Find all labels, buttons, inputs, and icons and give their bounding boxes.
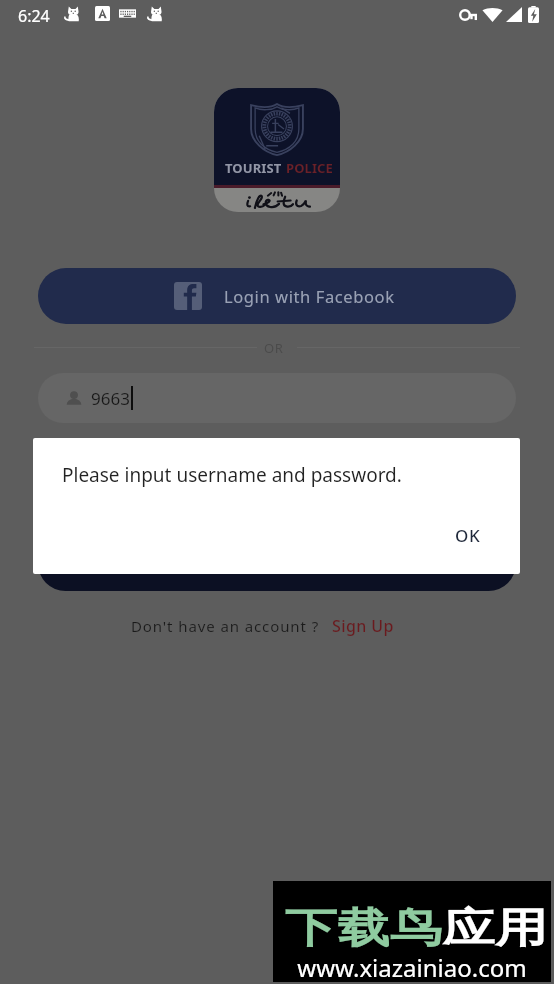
button[interactable]: 9663: [38, 373, 516, 423]
staticText: POLICE: [286, 159, 333, 177]
staticText: TOURIST: [225, 159, 282, 177]
staticText: 应用: [442, 903, 547, 955]
staticText: 6:24: [18, 5, 50, 27]
staticText: Login with Facebook: [224, 285, 395, 307]
staticText: LOGIN: [250, 553, 305, 575]
staticText: 9663: [91, 387, 130, 410]
staticText: OK: [455, 524, 481, 547]
button[interactable]: Sign Up: [332, 615, 394, 637]
button[interactable]: OK: [439, 514, 497, 557]
staticText: 下载鸟: [285, 903, 442, 955]
button[interactable]: Login with Facebook: [38, 268, 516, 324]
staticText: OR: [264, 339, 284, 357]
staticText: www.xiazainiao.com: [273, 951, 551, 984]
staticText: Don't have an account ?: [131, 616, 320, 636]
staticText: Please input username and password.: [62, 462, 402, 488]
staticText: Sign Up: [332, 615, 394, 637]
button[interactable]: LOGIN: [38, 536, 516, 591]
